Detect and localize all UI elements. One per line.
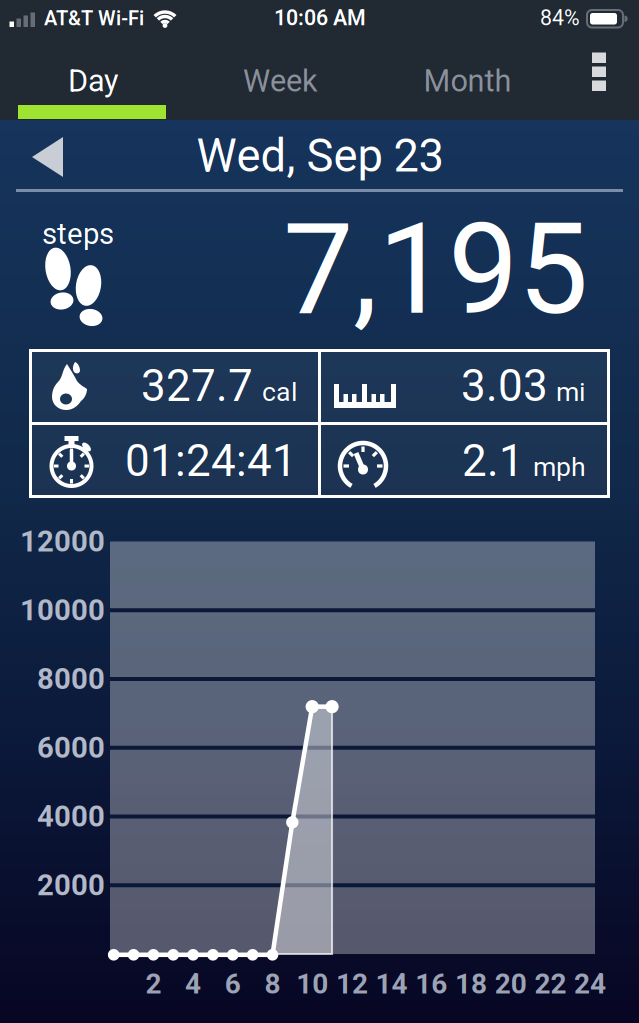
staticText: mph: [533, 452, 586, 482]
staticText: 8: [264, 968, 280, 1000]
staticText: 7,195: [283, 198, 588, 342]
staticText: Day: [68, 63, 119, 98]
staticText: 16: [415, 968, 447, 1000]
staticText: 12000: [20, 525, 105, 558]
staticText: 4: [185, 968, 201, 1000]
staticText: 2000: [37, 868, 105, 902]
staticText: 01:24:41: [125, 436, 297, 486]
staticText: steps: [42, 217, 114, 251]
staticText: 4000: [37, 800, 105, 833]
button[interactable]: Month: [374, 40, 561, 120]
staticText: 8000: [37, 662, 105, 696]
button[interactable]: Previous day: [15, 125, 79, 189]
staticText: Wed, Sep 23: [196, 130, 443, 182]
staticText: Week: [243, 63, 318, 98]
staticText: 14: [376, 968, 408, 1000]
staticText: 84%: [540, 6, 580, 30]
staticText: 20: [495, 968, 527, 1000]
staticText: 6000: [37, 731, 105, 764]
staticText: 2.1: [462, 436, 524, 486]
staticText: mi: [556, 377, 585, 407]
staticText: 12: [336, 968, 368, 1000]
button[interactable]: Week: [187, 40, 374, 120]
staticText: 18: [455, 968, 487, 1000]
staticText: 3.03: [461, 361, 548, 411]
staticText: cal: [262, 377, 297, 407]
staticText: 327.7: [141, 361, 253, 411]
staticText: 6: [225, 968, 241, 1000]
button[interactable]: Menu: [575, 45, 623, 97]
staticText: 24: [574, 968, 606, 1000]
staticText: Month: [423, 63, 511, 98]
staticText: 10: [296, 968, 328, 1000]
staticText: 2: [145, 968, 161, 1000]
staticText: 22: [534, 968, 566, 1000]
staticText: 10000: [20, 593, 105, 627]
button[interactable]: Day: [0, 40, 187, 120]
staticText: AT&T Wi-Fi: [44, 7, 144, 30]
staticText: 10:06 AM: [274, 6, 366, 30]
